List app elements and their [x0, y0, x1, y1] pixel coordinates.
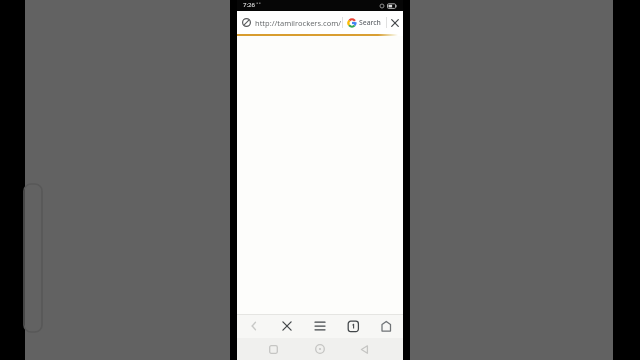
staticText: http://tamilrockers.com/ — [255, 18, 342, 28]
staticText: 7:26 — [243, 1, 255, 9]
button[interactable] — [337, 315, 370, 338]
button[interactable] — [370, 315, 403, 338]
button[interactable] — [237, 315, 271, 338]
button[interactable] — [271, 315, 304, 338]
button[interactable] — [263, 338, 283, 360]
button[interactable] — [310, 338, 330, 360]
button[interactable] — [354, 338, 374, 360]
button[interactable] — [387, 11, 403, 34]
button[interactable] — [304, 315, 337, 338]
button[interactable]: Search — [343, 11, 386, 34]
staticText: Search — [359, 18, 381, 27]
button[interactable]: http://tamilrockers.com/ — [237, 11, 403, 34]
